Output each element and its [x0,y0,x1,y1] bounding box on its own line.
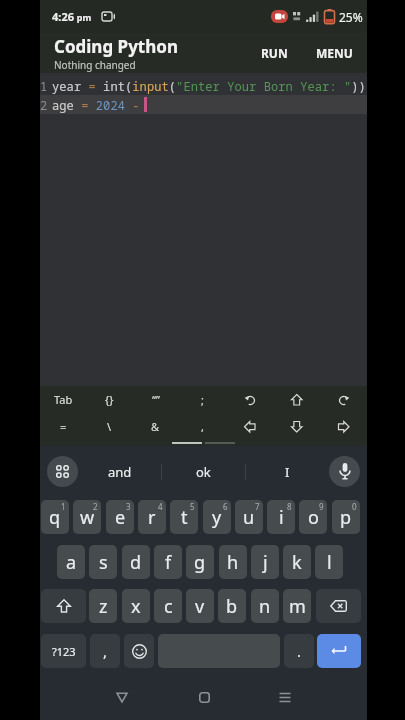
button[interactable]: e [106,500,134,534]
staticText: year = int(input("Enter Your Born Year: … [52,78,366,94]
staticText: r [148,505,156,530]
staticText: 8 [287,501,292,512]
button[interactable]: o [299,500,327,534]
button[interactable]: RUN [253,37,296,69]
staticText: b [226,594,238,619]
staticText: age = 2024 - [52,97,140,113]
button[interactable]: x [122,589,150,623]
button[interactable]: s [89,545,117,579]
staticText: s [99,550,108,575]
button[interactable] [316,589,361,623]
staticText: ok [196,463,211,481]
button[interactable]: i [267,500,295,534]
button[interactable] [226,413,273,440]
staticText: 9 [319,501,324,512]
button[interactable]: , [179,413,226,440]
button[interactable]: w [73,500,101,534]
button[interactable]: p [332,500,360,534]
button[interactable] [108,683,136,711]
button[interactable]: z [89,589,117,623]
button[interactable]: a [57,545,85,579]
button[interactable]: I [246,446,329,497]
staticText: 7 [255,501,260,512]
button[interactable]: l [315,545,343,579]
button[interactable]: . [284,634,314,668]
button[interactable] [271,683,299,711]
staticText: z [99,594,108,619]
staticText: t [181,505,188,530]
button[interactable]: ; [179,386,226,413]
button[interactable]: k [283,545,311,579]
staticText: , [103,641,108,661]
staticText: a [66,550,77,575]
staticText: e [115,505,126,530]
staticText: 5 [190,501,195,512]
button[interactable]: , [90,634,120,668]
staticText: g [194,550,206,575]
button[interactable] [320,413,367,440]
button[interactable]: MENU [310,37,359,69]
staticText: ?123 [52,644,76,659]
button[interactable]: g [186,545,214,579]
button[interactable]: q [41,500,69,534]
button[interactable] [41,589,86,623]
button[interactable] [47,456,78,487]
staticText: v [195,594,205,619]
button[interactable]: n [251,589,279,623]
staticText: l [327,550,332,575]
button[interactable] [273,413,320,440]
button[interactable]: t [170,500,198,534]
button[interactable] [329,456,360,487]
button[interactable]: h [219,545,247,579]
button[interactable] [320,386,367,413]
button[interactable]: c [154,589,182,623]
button[interactable]: & [132,413,179,440]
staticText: 2 [93,501,98,512]
staticText: p [340,505,352,530]
button[interactable]: Tab [40,386,86,413]
button[interactable]: ok [162,446,245,497]
staticText: f [165,550,172,575]
staticText: Nothing changed [54,58,136,72]
button[interactable]: v [186,589,214,623]
staticText: d [130,550,142,575]
button[interactable]: b [218,589,246,623]
staticText: & [151,419,160,434]
button[interactable] [190,683,218,711]
button[interactable]: m [283,589,311,623]
staticText: I [285,463,290,481]
button[interactable] [226,386,273,413]
staticText: ; [201,392,204,407]
staticText: {} [105,392,114,407]
staticText: . [297,641,302,661]
button[interactable]: j [251,545,279,579]
staticText: n [259,594,271,619]
staticText: w [80,505,95,530]
staticText: 4 [158,501,163,512]
button[interactable]: and [78,446,161,497]
button[interactable]: r [138,500,166,534]
button[interactable]: = [40,413,86,440]
button[interactable]: f [154,545,182,579]
staticText: h [227,550,239,575]
staticText: 2 [40,97,48,113]
staticText: , [201,419,204,434]
staticText: \ [107,419,112,434]
button[interactable] [124,634,154,668]
staticText: k [292,550,302,575]
button[interactable]: y [203,500,231,534]
button[interactable]: {} [86,386,132,413]
button[interactable]: “” [132,386,179,413]
staticText: Tab [54,392,73,407]
button[interactable] [273,386,320,413]
button[interactable]: d [122,545,150,579]
button[interactable]: u [235,500,263,534]
staticText: and [108,463,132,481]
staticText: 1 [40,78,48,94]
button[interactable] [317,634,361,668]
button[interactable]: \ [86,413,132,440]
button[interactable]: ?123 [41,634,86,668]
staticText: 25% [339,9,363,25]
staticText: 3 [126,501,131,512]
